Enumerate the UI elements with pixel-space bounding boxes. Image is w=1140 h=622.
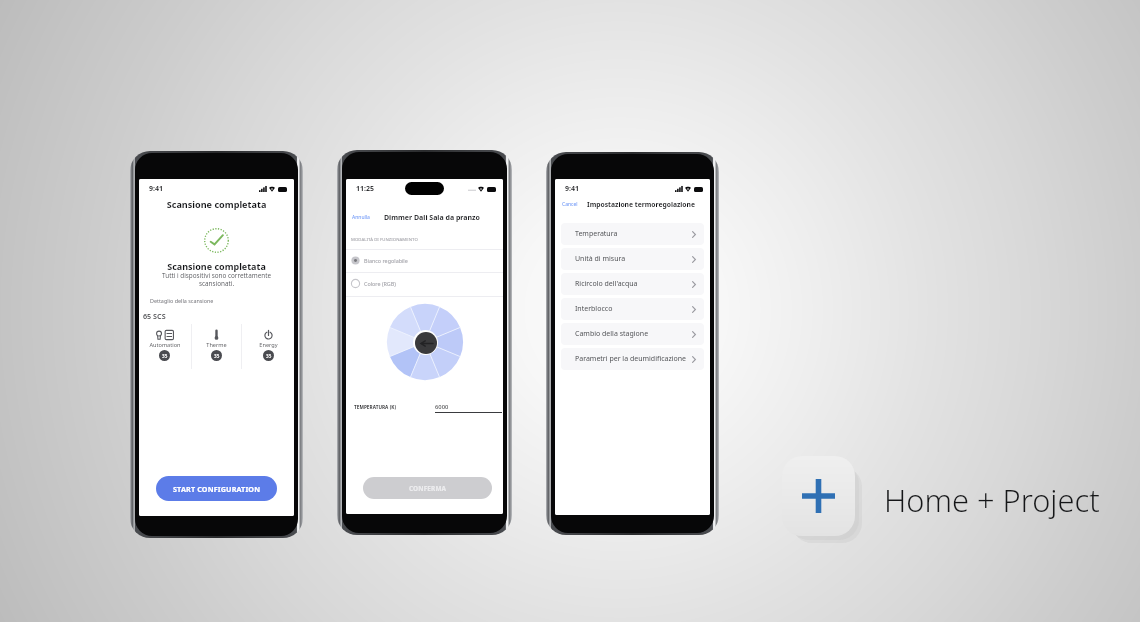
staticText: Parametri per la deumidificazione — [575, 354, 687, 364]
staticText: Impostazione termoregolazione — [587, 200, 696, 209]
staticText: Ricircolo dell'acqua — [575, 279, 638, 289]
button[interactable]: Unità di misura — [561, 248, 704, 270]
button[interactable]: Automation — [139, 324, 190, 361]
button[interactable]: Temperatura — [561, 223, 704, 245]
button[interactable]: Interblocco — [561, 298, 704, 320]
staticText: Interblocco — [575, 304, 613, 314]
button[interactable]: Annulla — [352, 214, 370, 221]
button[interactable]: Cambio della stagione — [561, 323, 704, 345]
staticText: Energy — [259, 341, 278, 349]
staticText: 35 — [266, 353, 272, 359]
staticText: 65 SCS — [143, 311, 166, 321]
button[interactable]: Bianco regolabile — [346, 254, 503, 267]
staticText: TEMPERATURA (K) — [354, 404, 397, 410]
staticText: Scansione completata — [139, 260, 294, 272]
button[interactable]: CONFERMA — [363, 477, 492, 499]
staticText: 6000 — [435, 403, 449, 411]
staticText: Therme — [206, 341, 227, 349]
staticText: Unità di misura — [575, 254, 626, 264]
button[interactable]: Cancel — [562, 201, 578, 208]
button[interactable]: Colore (RGB) — [346, 277, 503, 290]
button[interactable]: Energy — [242, 324, 294, 361]
staticText: Dimmer Dali Sala da pranzo — [384, 213, 480, 223]
staticText: Bianco regolabile — [364, 257, 408, 264]
staticText: CONFERMA — [409, 484, 447, 493]
button[interactable]: Home + Project logo — [782, 456, 855, 536]
staticText: MODALITÀ DI FUNZIONAMENTO — [351, 236, 418, 242]
staticText: Home + Project — [884, 479, 1100, 521]
button[interactable]: Ricircolo dell'acqua — [561, 273, 704, 295]
staticText: Colore (RGB) — [364, 280, 396, 287]
staticText: 9:41 — [565, 184, 579, 194]
staticText: 35 — [214, 353, 220, 359]
staticText: 35 — [162, 353, 168, 359]
staticText: Tutti i dispositivi sono correttamente s… — [151, 271, 282, 288]
staticText: Scansione completata — [139, 198, 294, 210]
button[interactable]: Parametri per la deumidificazione — [561, 348, 704, 370]
staticText: Cambio della stagione — [575, 329, 649, 339]
staticText: START CONFIGURATION — [173, 484, 261, 494]
button[interactable]: Therme — [190, 324, 242, 361]
button[interactable]: START CONFIGURATION — [156, 476, 277, 501]
staticText: 11:25 — [356, 184, 374, 194]
staticText: Dettaglio della scansione — [150, 297, 214, 304]
staticText: Temperatura — [575, 229, 618, 239]
staticText: Automation — [149, 341, 181, 349]
button[interactable]: Back — [415, 332, 437, 354]
staticText: 9:41 — [149, 184, 163, 194]
